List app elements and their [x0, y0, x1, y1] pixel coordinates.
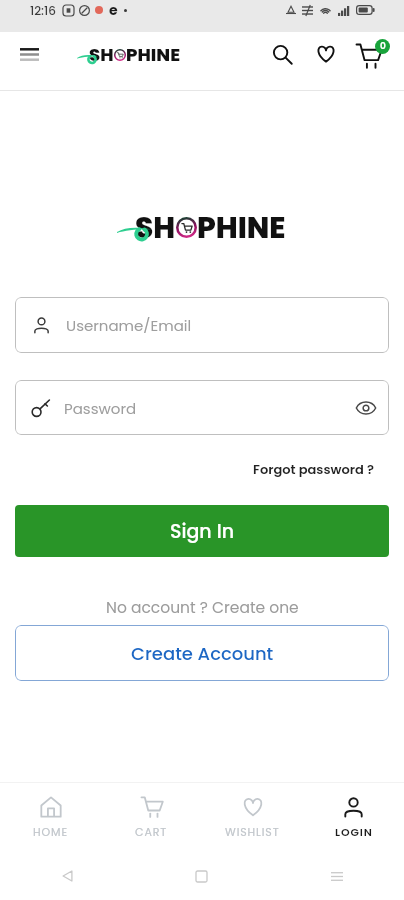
staticText: SH	[89, 42, 114, 67]
staticText: CART	[135, 824, 168, 839]
staticText: PHINE	[126, 42, 180, 67]
button[interactable]: Forgot password ?	[251, 458, 376, 480]
button[interactable]: Show password	[353, 395, 379, 421]
staticText: WISHLIST	[225, 824, 280, 839]
button[interactable]: Wishlist	[304, 32, 347, 76]
staticText: 12:16	[30, 2, 56, 19]
staticText: No account ? Create one	[106, 597, 299, 619]
button[interactable]: WISHLIST	[202, 783, 303, 852]
button[interactable]: LOGIN	[303, 783, 404, 852]
staticText: 0	[380, 40, 386, 53]
staticText: SH	[135, 207, 176, 248]
staticText: Create Account	[131, 641, 274, 666]
staticText: HOME	[33, 824, 68, 839]
button[interactable]: Username/Email	[15, 297, 389, 353]
button[interactable]: Search	[260, 32, 304, 76]
staticText: e	[109, 0, 118, 20]
button[interactable]: HOME	[0, 783, 101, 852]
button[interactable]: Cart	[347, 32, 392, 76]
staticText: Forgot password ?	[253, 460, 374, 478]
button[interactable]: Sign In	[15, 505, 389, 557]
staticText: Sign In	[170, 518, 234, 545]
button[interactable]: CART	[101, 783, 202, 852]
staticText: Password	[64, 398, 137, 419]
button[interactable]: Create Account	[15, 625, 389, 681]
staticText: PHINE	[197, 207, 286, 248]
button[interactable]: Menu	[14, 39, 44, 69]
staticText: Username/Email	[66, 315, 192, 336]
button[interactable]: Password	[15, 380, 389, 435]
staticText: LOGIN	[335, 824, 373, 839]
